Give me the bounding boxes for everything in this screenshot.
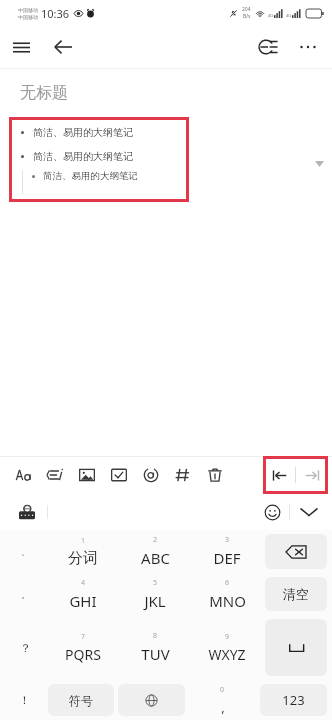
button[interactable]: 5 (121, 577, 189, 611)
staticText: 7 (81, 632, 86, 642)
staticText: TUV (141, 644, 170, 664)
staticText: 符号 (69, 693, 93, 708)
button[interactable]: ？ (5, 619, 45, 676)
staticText: 、 (21, 546, 30, 557)
staticText: 3 (225, 535, 230, 545)
button[interactable]: Input method (12, 497, 42, 527)
button[interactable]: Insert image (71, 456, 103, 494)
staticText: ？ (20, 641, 31, 655)
button[interactable]: 7 (49, 619, 117, 676)
staticText: ！ (19, 693, 30, 707)
button[interactable]: 9 (193, 619, 261, 676)
button[interactable]: 8 (121, 619, 189, 676)
button[interactable]: Emoji (255, 495, 289, 529)
staticText: 4G (268, 13, 274, 18)
staticText: 无标题 (20, 83, 68, 103)
staticText: 中国移动 (18, 14, 38, 20)
button[interactable]: Text format (8, 456, 39, 494)
staticText: ABC (141, 548, 170, 568)
staticText: 204 (242, 6, 251, 13)
button[interactable]: 1 (49, 534, 117, 569)
button[interactable]: Mention (135, 456, 167, 494)
staticText: B/s (243, 13, 251, 20)
button[interactable]: 清空 (265, 577, 327, 611)
staticText: 10:36 (41, 6, 70, 21)
staticText: 1 (81, 536, 86, 546)
button[interactable]: 4 (49, 577, 117, 611)
staticText: PQRS (65, 645, 101, 664)
button[interactable]: ！ (5, 684, 44, 716)
staticText: 清空 (283, 586, 309, 602)
button[interactable]: More options (288, 27, 328, 67)
button[interactable]: Tag (167, 456, 199, 494)
staticText: 简洁、易用的大纲笔记 (43, 170, 138, 182)
button[interactable]: Backspace (265, 534, 327, 569)
button[interactable]: 123 (260, 684, 327, 716)
staticText: JKL (144, 591, 166, 611)
button[interactable]: Hide keyboard (290, 494, 328, 530)
staticText: MNO (209, 591, 246, 611)
button[interactable]: Checkbox (103, 456, 135, 494)
button[interactable]: Delete (199, 456, 231, 494)
button[interactable]: 0 (189, 684, 256, 716)
staticText: 2 (153, 535, 158, 545)
staticText: 简洁、易用的大纲笔记 (33, 126, 133, 139)
button[interactable]: 符号 (48, 684, 114, 716)
button[interactable]: Outdent (263, 458, 295, 492)
staticText: 8 (153, 631, 158, 641)
staticText: 123 (282, 691, 305, 709)
staticText: DEF (213, 548, 241, 568)
staticText: 0 (220, 685, 225, 695)
button[interactable]: Switch input language (118, 684, 185, 716)
staticText: 4G (286, 13, 292, 18)
button[interactable]: Indent (296, 458, 328, 492)
staticText: GHI (69, 591, 97, 611)
button[interactable]: Enter (265, 619, 327, 676)
staticText: , (221, 698, 225, 716)
staticText: 6 (225, 578, 230, 588)
staticText: 简洁、易用的大纲笔记 (33, 150, 133, 163)
staticText: 分词 (68, 549, 98, 568)
button[interactable]: 6 (193, 577, 261, 611)
staticText: 5 (153, 578, 158, 588)
staticText: 。 (21, 589, 30, 600)
button[interactable]: 。 (5, 577, 45, 611)
staticText: 4 (81, 578, 86, 588)
button[interactable]: Back (42, 26, 84, 68)
button[interactable]: 2 (121, 534, 189, 569)
staticText: 9 (225, 632, 230, 642)
button[interactable]: 3 (193, 534, 261, 569)
staticText: 中国移动 (18, 7, 38, 13)
button[interactable]: Menu (0, 26, 42, 68)
button[interactable]: Outline (248, 27, 288, 67)
staticText: WXYZ (208, 645, 246, 664)
button[interactable]: List style (39, 456, 71, 494)
